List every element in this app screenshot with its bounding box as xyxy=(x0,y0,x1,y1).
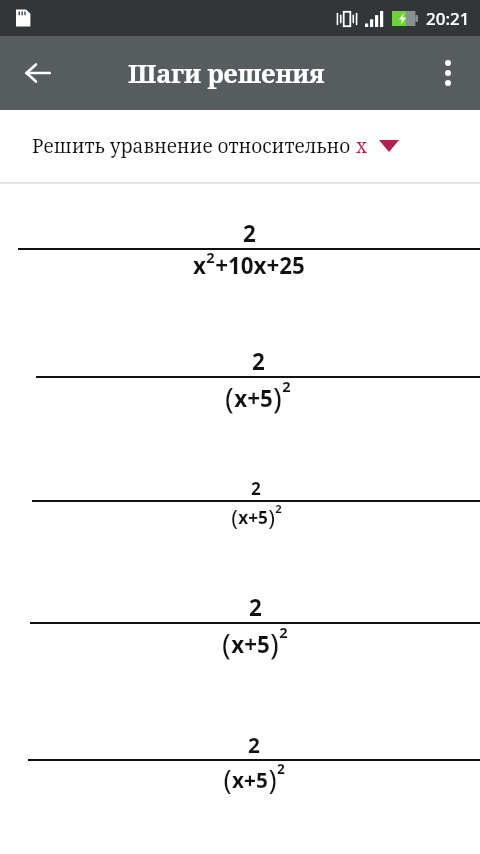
button[interactable]: 2 xyxy=(0,696,480,832)
staticText: ) xyxy=(270,624,279,664)
staticText: 2 xyxy=(277,759,285,778)
staticText: ( xyxy=(225,378,234,418)
button[interactable]: 2 xyxy=(0,560,480,696)
button[interactable]: Решить уравнение относительно xyxy=(0,110,480,182)
staticText: +10x+25 xyxy=(215,250,305,280)
staticText: 2 xyxy=(252,346,265,376)
button[interactable]: 2 xyxy=(0,314,480,450)
button[interactable]: 2 xyxy=(0,450,480,560)
staticText: x+5 xyxy=(234,383,273,413)
staticText: Шаги решения xyxy=(128,56,325,90)
staticText: ( xyxy=(223,761,232,798)
staticText: 20:21 xyxy=(426,7,470,30)
staticText: 2 xyxy=(275,501,282,516)
staticText: x xyxy=(356,133,367,159)
staticText: ) xyxy=(273,378,282,418)
staticText: x+5 xyxy=(231,629,270,659)
staticText: x+5 xyxy=(232,766,268,794)
staticText: ) xyxy=(268,502,275,533)
staticText: 2 xyxy=(248,731,260,759)
staticText: x+5 xyxy=(238,506,268,529)
staticText: 2 xyxy=(282,376,291,396)
staticText: 2 xyxy=(279,622,288,642)
staticText: x xyxy=(193,250,206,280)
staticText: Решить уравнение относительно xyxy=(32,133,356,159)
staticText: ) xyxy=(268,761,277,798)
staticText: 2 xyxy=(251,477,261,500)
button[interactable]: 2 xyxy=(0,184,480,314)
button[interactable]: More options xyxy=(424,49,472,97)
staticText: ( xyxy=(222,624,231,664)
staticText: 2 xyxy=(206,247,215,267)
staticText: ( xyxy=(231,502,238,533)
staticText: 2 xyxy=(243,218,256,248)
button[interactable]: Back xyxy=(12,47,64,99)
staticText: 2 xyxy=(249,592,262,622)
